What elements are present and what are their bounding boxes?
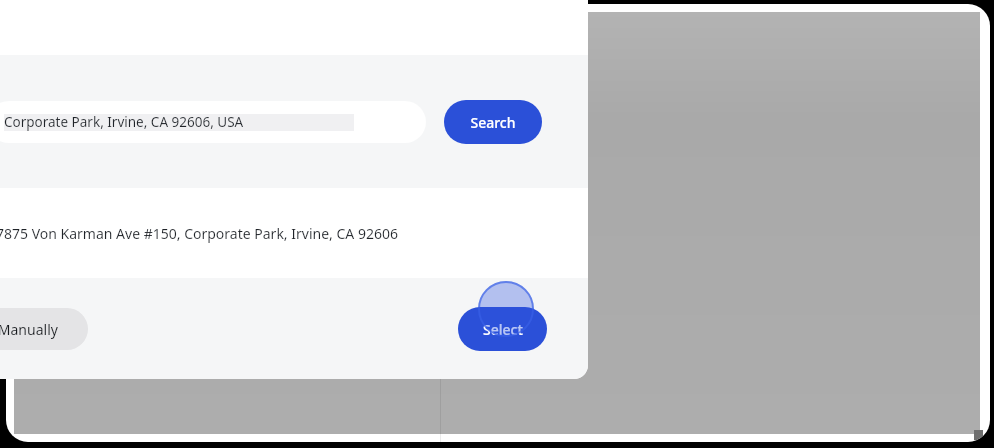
- button[interactable]: Corporate Park, Irvine, CA 92606, USA: [0, 101, 426, 143]
- staticText: Enter Manually: [0, 320, 58, 339]
- staticText: Search: [470, 113, 516, 132]
- button[interactable]: Select: [458, 307, 547, 351]
- staticText: 17875 Von Karman Ave #150, Corporate Par…: [0, 224, 398, 243]
- other: Touch indicator: [478, 281, 534, 337]
- staticText: Select: [483, 320, 523, 339]
- button[interactable]: Enter Manually: [0, 308, 88, 350]
- button[interactable]: Search: [444, 100, 542, 144]
- button[interactable]: 17875 Von Karman Ave #150, Corporate Par…: [0, 188, 588, 278]
- staticText: Corporate Park, Irvine, CA 92606, USA: [4, 113, 244, 131]
